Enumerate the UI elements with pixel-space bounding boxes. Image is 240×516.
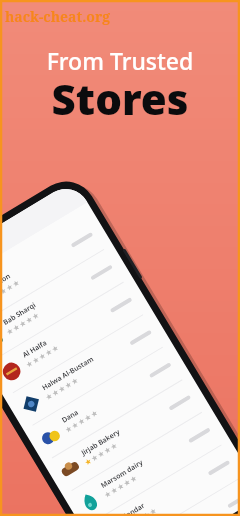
button[interactable]: Trusted stores list preview [0, 0, 240, 200]
